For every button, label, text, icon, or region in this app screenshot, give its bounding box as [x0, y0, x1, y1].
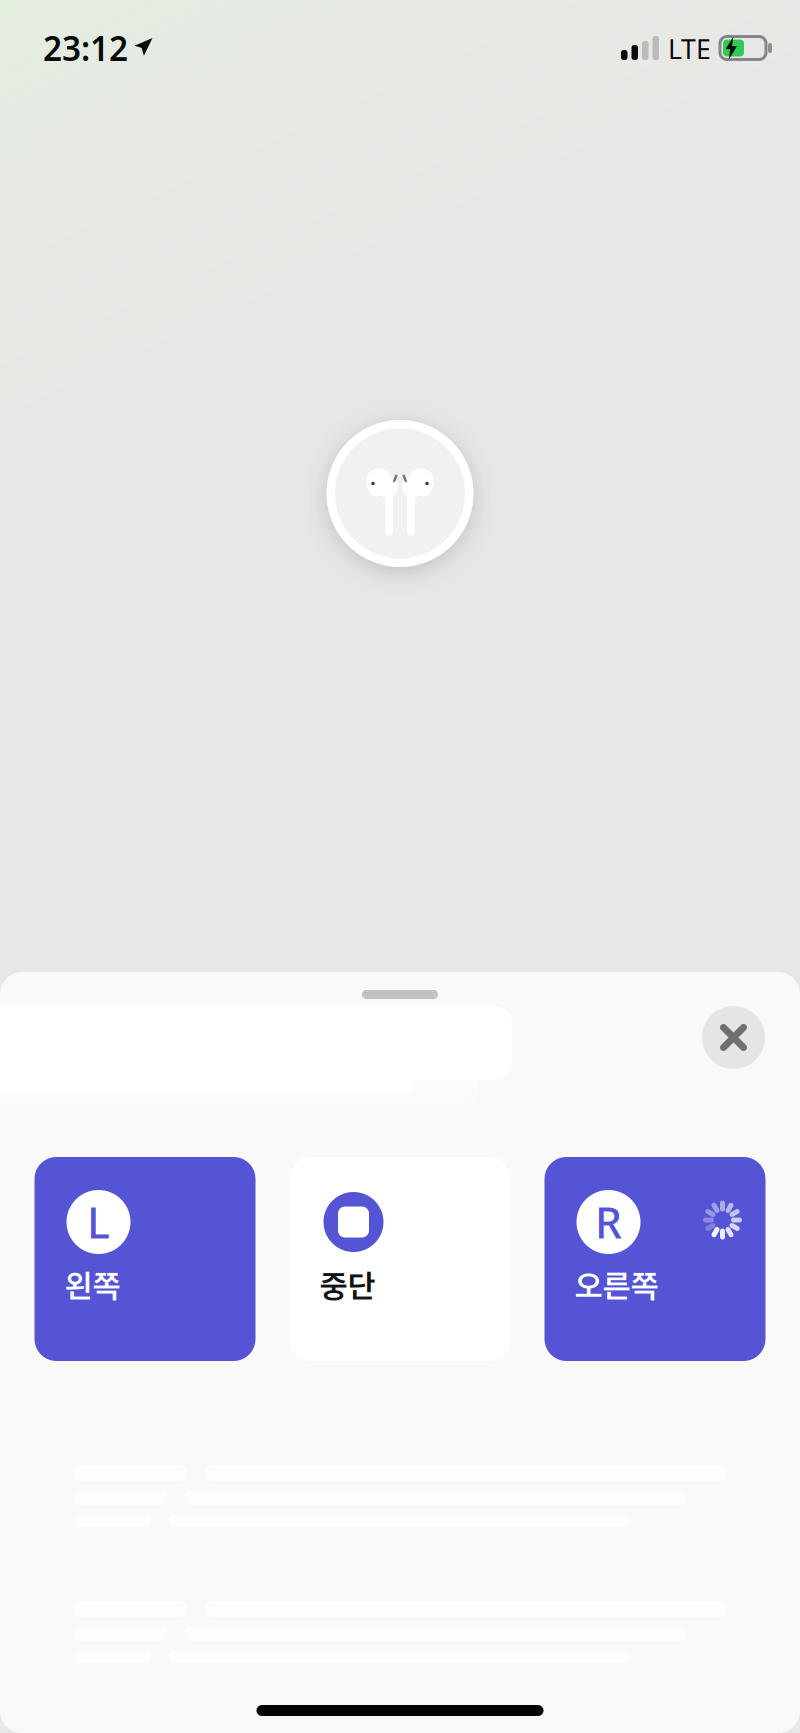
button[interactable]: Close	[702, 1006, 765, 1069]
staticText: 23:12	[43, 26, 128, 70]
staticText: 왼쪽	[64, 1262, 120, 1306]
staticText: L	[87, 1194, 110, 1250]
button[interactable]: 중단	[289, 1157, 510, 1361]
button[interactable]: R	[544, 1157, 765, 1361]
staticText: 오른쪽	[574, 1262, 658, 1306]
staticText: LTE	[668, 31, 711, 67]
staticText: R	[595, 1194, 622, 1250]
button[interactable]: L	[34, 1157, 255, 1361]
staticText: 중단	[319, 1262, 375, 1306]
